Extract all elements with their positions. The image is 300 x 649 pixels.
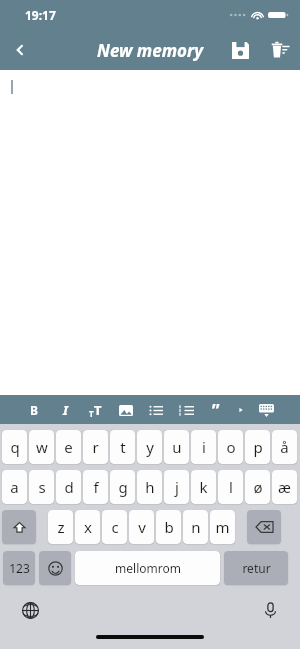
button[interactable]: c bbox=[102, 510, 127, 544]
button[interactable]: Quote bbox=[205, 399, 227, 421]
button[interactable]: g bbox=[110, 470, 135, 504]
staticText: e bbox=[64, 437, 73, 457]
staticText: æ bbox=[278, 477, 291, 497]
staticText: u bbox=[172, 437, 182, 457]
button[interactable]: Bold bbox=[22, 398, 46, 422]
staticText: B bbox=[30, 402, 38, 418]
staticText: c bbox=[111, 517, 119, 537]
button[interactable]: å bbox=[272, 430, 297, 464]
button[interactable]: Delete bbox=[260, 30, 300, 70]
button[interactable]: ø bbox=[245, 470, 270, 504]
button[interactable]: Shift bbox=[2, 510, 36, 544]
staticText: r bbox=[92, 437, 99, 457]
staticText: New memory bbox=[97, 39, 204, 62]
button[interactable]: e bbox=[56, 430, 81, 464]
staticText: f bbox=[93, 477, 99, 497]
staticText: retur bbox=[242, 560, 271, 576]
button[interactable]: Italic bbox=[53, 398, 77, 422]
button[interactable]: mellomrom bbox=[75, 551, 220, 585]
button[interactable]: Voice input bbox=[258, 598, 282, 622]
button[interactable]: Save bbox=[220, 30, 260, 70]
button[interactable]: Change language bbox=[18, 598, 42, 622]
button[interactable]: Emoji bbox=[39, 551, 71, 585]
staticText: w bbox=[36, 437, 48, 457]
button[interactable]: p bbox=[245, 430, 270, 464]
staticText: k bbox=[199, 477, 208, 497]
button[interactable]: k bbox=[191, 470, 216, 504]
button[interactable]: q bbox=[2, 430, 27, 464]
staticText: å bbox=[280, 437, 289, 457]
button[interactable]: b bbox=[156, 510, 181, 544]
staticText: n bbox=[191, 517, 201, 537]
staticText: d bbox=[64, 477, 74, 497]
staticText: t bbox=[120, 437, 126, 457]
button[interactable]: æ bbox=[272, 470, 297, 504]
button[interactable]: h bbox=[137, 470, 162, 504]
staticText: l bbox=[229, 477, 233, 497]
staticText: x bbox=[84, 517, 92, 537]
button[interactable]: j bbox=[164, 470, 189, 504]
button[interactable]: x bbox=[75, 510, 100, 544]
staticText: I bbox=[63, 401, 68, 419]
staticText: ø bbox=[253, 477, 263, 497]
staticText: 19:17 bbox=[25, 7, 56, 23]
button[interactable]: w bbox=[29, 430, 54, 464]
staticText: 123 bbox=[9, 560, 30, 576]
staticText: T bbox=[89, 408, 94, 419]
button[interactable]: Backspace bbox=[247, 510, 281, 544]
button[interactable]: y bbox=[137, 430, 162, 464]
button[interactable]: f bbox=[83, 470, 108, 504]
staticText: j bbox=[175, 477, 179, 497]
staticText: p bbox=[253, 437, 263, 457]
button[interactable]: n bbox=[183, 510, 208, 544]
staticText: i bbox=[202, 437, 206, 457]
button[interactable]: u bbox=[164, 430, 189, 464]
button[interactable]: v bbox=[129, 510, 154, 544]
button[interactable]: d bbox=[56, 470, 81, 504]
staticText: ” bbox=[212, 399, 220, 421]
staticText: y bbox=[146, 437, 154, 457]
button[interactable]: s bbox=[29, 470, 54, 504]
staticText: a bbox=[10, 477, 19, 497]
button[interactable]: i bbox=[191, 430, 216, 464]
button[interactable]: m bbox=[210, 510, 235, 544]
button[interactable]: a bbox=[2, 470, 27, 504]
staticText: o bbox=[226, 437, 236, 457]
staticText: q bbox=[10, 437, 20, 457]
staticText: g bbox=[118, 477, 128, 497]
button[interactable]: t bbox=[110, 430, 135, 464]
button[interactable]: Insert image bbox=[114, 398, 138, 422]
button[interactable]: 123 bbox=[3, 551, 35, 585]
staticText: mellomrom bbox=[115, 560, 181, 576]
button[interactable]: Back bbox=[0, 30, 40, 70]
staticText: v bbox=[138, 517, 146, 537]
button[interactable]: retur bbox=[224, 551, 288, 585]
button[interactable]: Bulleted list bbox=[144, 398, 168, 422]
staticText: s bbox=[38, 477, 46, 497]
button[interactable]: Text size bbox=[83, 398, 107, 422]
button[interactable]: r bbox=[83, 430, 108, 464]
button[interactable]: More bbox=[234, 403, 248, 417]
staticText: T bbox=[94, 401, 102, 419]
button[interactable]: o bbox=[218, 430, 243, 464]
staticText: m bbox=[215, 517, 230, 537]
staticText: z bbox=[57, 517, 65, 537]
button[interactable]: Numbered list bbox=[175, 398, 199, 422]
button[interactable]: Hide keyboard bbox=[254, 398, 278, 422]
staticText: b bbox=[164, 517, 174, 537]
button[interactable]: z bbox=[48, 510, 73, 544]
button[interactable]: l bbox=[218, 470, 243, 504]
staticText: h bbox=[145, 477, 155, 497]
